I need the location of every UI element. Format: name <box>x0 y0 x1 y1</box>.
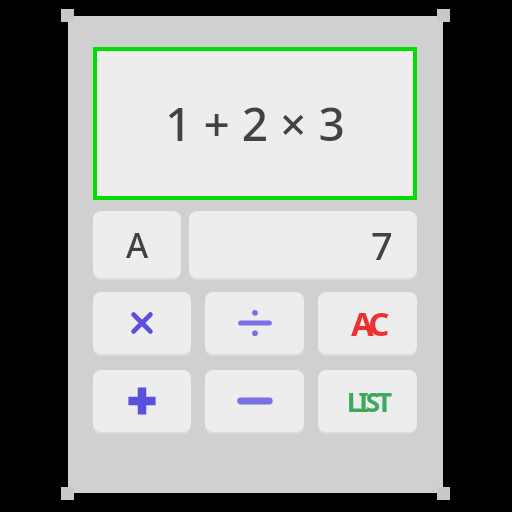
button[interactable]: 1 + 2 × 3 <box>98 52 412 195</box>
button[interactable]: A <box>93 211 181 278</box>
staticText: AC <box>351 301 385 346</box>
staticText: A <box>126 222 149 268</box>
staticText: 7 <box>371 219 393 271</box>
button[interactable]: 7 <box>189 211 417 278</box>
button[interactable]: Multiply <box>93 292 191 354</box>
button[interactable]: Plus <box>93 370 191 432</box>
button[interactable]: Minus <box>205 370 304 432</box>
staticText: LIST <box>347 384 389 419</box>
button[interactable]: AC <box>318 292 417 354</box>
staticText: 1 + 2 × 3 <box>165 92 345 155</box>
button[interactable]: LIST <box>318 370 417 432</box>
button[interactable]: Divide <box>205 292 304 354</box>
